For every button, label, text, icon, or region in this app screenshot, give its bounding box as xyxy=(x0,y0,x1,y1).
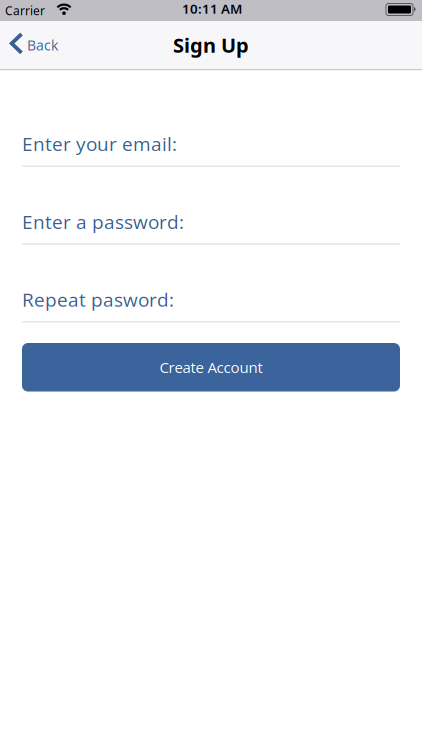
button[interactable]: Back xyxy=(0,34,66,56)
staticText: Back xyxy=(27,35,58,55)
button[interactable]: Create Account xyxy=(22,343,400,391)
staticText: Sign Up xyxy=(173,32,249,58)
staticText: Enter your email: xyxy=(22,131,177,157)
staticText: Carrier xyxy=(5,2,45,18)
staticText: Repeat pasword: xyxy=(22,286,174,312)
staticText: 10:11 AM xyxy=(182,0,242,17)
staticText: Enter a password: xyxy=(22,209,184,234)
staticText: Create Account xyxy=(159,357,262,377)
